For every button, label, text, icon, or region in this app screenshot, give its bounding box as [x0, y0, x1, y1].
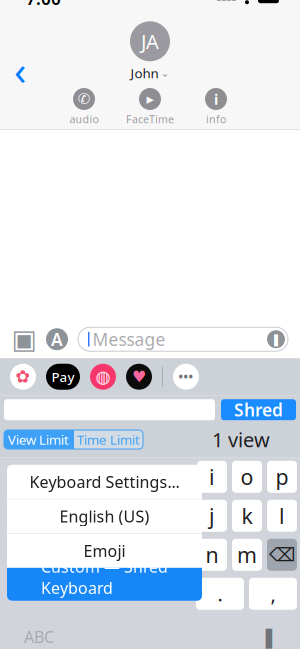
button[interactable]: English (US): [7, 499, 202, 533]
staticText: A: [51, 328, 63, 351]
staticText: Emoji: [83, 540, 125, 561]
button[interactable]: k: [232, 500, 262, 532]
button[interactable]: Dictate: [254, 623, 284, 649]
button[interactable]: ABC: [16, 623, 62, 649]
staticText: •••: [178, 369, 193, 385]
staticText: p: [275, 463, 288, 491]
staticText: ABC: [24, 626, 54, 647]
staticText: View Limit: [8, 431, 69, 448]
button[interactable]: Audio message: [267, 330, 285, 348]
button[interactable]: Back: [0, 48, 40, 92]
button[interactable]: Keyboard Settings...: [7, 465, 202, 499]
button[interactable]: info: [205, 88, 227, 126]
staticText: i: [209, 463, 215, 491]
button[interactable]: l: [267, 500, 297, 532]
button[interactable]: View Limit: [4, 430, 73, 449]
button[interactable]: audio: [69, 88, 98, 126]
button[interactable]: Emoji: [7, 534, 202, 568]
button[interactable]: i: [197, 461, 227, 493]
staticText: ◍: [95, 367, 110, 387]
button[interactable]: App Store: [46, 328, 68, 351]
staticText: l: [279, 502, 285, 530]
staticText: ‹: [14, 43, 26, 96]
button[interactable]: Time Limit: [74, 430, 143, 449]
staticText: ,: [270, 580, 275, 607]
staticText: John: [130, 64, 158, 82]
staticText: Keyboard Settings...: [29, 471, 179, 492]
button[interactable]: j: [197, 500, 227, 532]
staticText: Shred: [234, 398, 283, 421]
button[interactable]: FaceTime: [126, 88, 174, 126]
button[interactable]: Shred: [126, 364, 152, 390]
button[interactable]: Custom — Shred Keyboard: [7, 568, 202, 601]
staticText: ▪▪▪▪: [216, 0, 236, 3]
button[interactable]: o: [232, 461, 262, 493]
button[interactable]: m: [232, 539, 262, 571]
staticText: j: [209, 502, 215, 530]
staticText: FaceTime: [126, 112, 174, 126]
staticText: ⌄: [160, 67, 169, 79]
staticText: JA: [141, 28, 159, 55]
staticText: 7:00: [26, 0, 61, 10]
staticText: Pay: [51, 368, 74, 386]
staticText: audio: [69, 112, 98, 126]
button[interactable]: Photos: [10, 364, 36, 390]
staticText: .: [217, 580, 222, 607]
staticText: info: [206, 112, 226, 126]
staticText: o: [240, 463, 253, 491]
button[interactable]: Shred: [221, 399, 296, 420]
staticText: ▸: [146, 91, 153, 107]
staticText: ♥: [132, 368, 146, 386]
staticText: n: [205, 541, 218, 569]
staticText: 1 view: [212, 426, 270, 453]
staticText: ❚: [260, 625, 277, 648]
staticText: ⌫: [269, 544, 295, 565]
staticText: Time Limit: [77, 431, 140, 448]
staticText: ▣: [11, 324, 36, 354]
staticText: Message: [92, 328, 165, 351]
button[interactable]: Image search: [90, 364, 116, 390]
staticText: English: [85, 598, 123, 613]
button[interactable]: More apps: [173, 364, 199, 390]
staticText: English (US): [59, 506, 149, 527]
staticText: Custom — Shred Keyboard: [41, 556, 168, 598]
staticText: i: [214, 89, 218, 109]
button[interactable]: p: [267, 461, 297, 493]
staticText: ❚: [271, 332, 281, 346]
staticText: k: [241, 502, 252, 530]
staticText: m: [237, 541, 257, 569]
button[interactable]: n: [197, 539, 227, 571]
staticText: ✿: [15, 367, 30, 387]
button[interactable]: Apple Pay: [46, 364, 80, 390]
button[interactable]: Camera: [12, 327, 36, 351]
staticText: ✆: [78, 91, 90, 107]
